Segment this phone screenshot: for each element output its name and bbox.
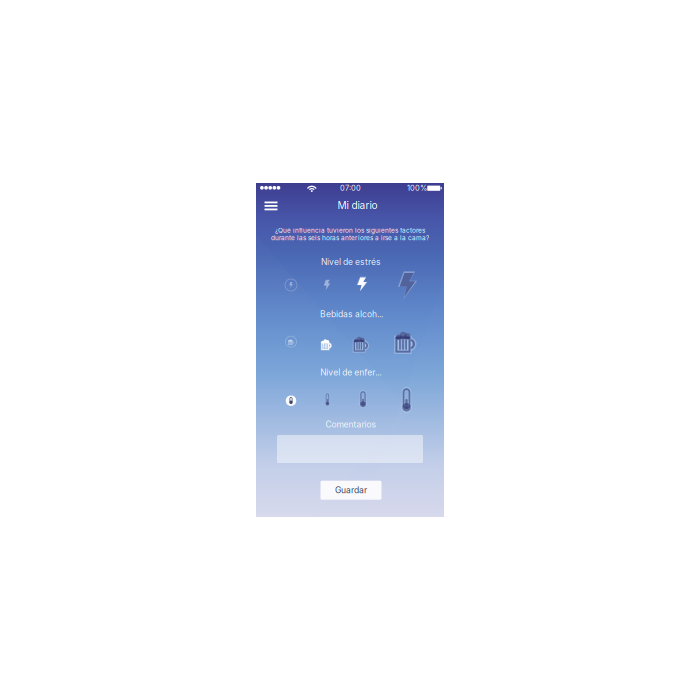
staticText: Bebidas alcoh... — [320, 309, 383, 319]
staticText: Guardar — [335, 485, 367, 495]
button[interactable]: Estrés medio — [357, 277, 367, 291]
staticText: 07:00 — [340, 183, 361, 192]
button[interactable]: Enfermedad moderada — [360, 392, 366, 407]
button[interactable]: Enfermedad grave — [402, 389, 411, 412]
button[interactable]: Sin estrés — [285, 279, 297, 291]
button[interactable]: Sin enfermedad — [286, 395, 296, 406]
button[interactable]: Dos bebidas — [353, 335, 368, 351]
button[interactable]: Sin bebidas — [285, 336, 296, 347]
staticText: Nivel de enfer... — [320, 367, 381, 377]
button[interactable]: Estrés bajo — [324, 280, 330, 290]
button[interactable]: Muchas bebidas — [395, 329, 416, 352]
button[interactable]: Guardar — [320, 481, 381, 500]
staticText: 100% — [407, 183, 427, 192]
button[interactable]: Enfermedad leve — [325, 394, 329, 406]
button[interactable]: Estrés alto — [399, 273, 415, 297]
staticText: durante las seis horas anteriores a irse… — [271, 234, 429, 242]
staticText: ¿Qué influencia tuvieron los siguientes … — [275, 227, 425, 234]
staticText: Comentarios — [325, 419, 376, 430]
button[interactable]: Comentarios — [277, 435, 423, 463]
staticText: Nivel de estrés — [321, 257, 381, 267]
button[interactable]: Una bebida — [321, 338, 332, 350]
staticText: Mi diario — [337, 199, 377, 212]
button[interactable]: Menu — [261, 198, 281, 214]
